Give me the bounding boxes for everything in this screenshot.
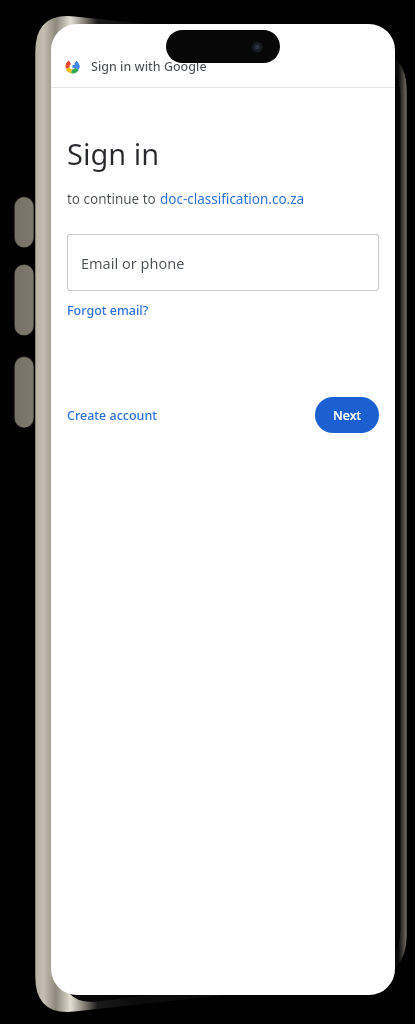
other: Dynamic Island (166, 30, 280, 63)
button[interactable]: doc-classification.co.za (160, 190, 305, 208)
button[interactable]: Create account (67, 401, 158, 430)
staticText: Create account (67, 407, 158, 424)
staticText: Email or phone (81, 253, 185, 273)
staticText: Sign in (67, 134, 160, 173)
staticText: Sign in with Google (91, 58, 207, 75)
staticText: Forgot email? (67, 302, 149, 319)
button[interactable]: Email or phone (67, 234, 379, 291)
staticText: Next (333, 407, 362, 424)
button[interactable]: Forgot email? (67, 300, 149, 321)
staticText: to continue to (67, 190, 160, 208)
button[interactable]: Next (315, 397, 379, 433)
